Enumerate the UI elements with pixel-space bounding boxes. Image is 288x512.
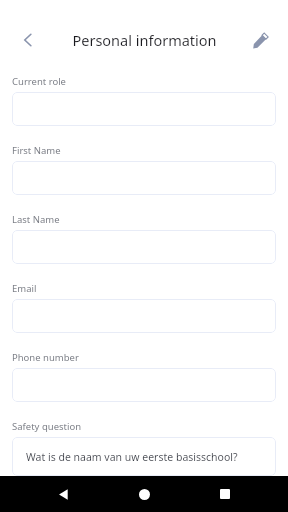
staticText: Current role: [12, 75, 66, 88]
staticText: Personal information: [72, 30, 217, 50]
button[interactable]: [12, 230, 276, 264]
staticText: Phone number: [12, 351, 79, 364]
button[interactable]: Back: [11, 23, 45, 57]
button[interactable]: [12, 161, 276, 195]
button[interactable]: [12, 299, 276, 333]
staticText: Email: [12, 282, 37, 295]
button[interactable]: Wat is de naam van uw eerste basisschool…: [12, 437, 276, 476]
button[interactable]: [12, 368, 276, 402]
staticText: First Name: [12, 144, 61, 157]
staticText: Safety question: [12, 420, 82, 433]
button[interactable]: [12, 92, 276, 126]
button[interactable]: Home: [126, 476, 162, 512]
staticText: Last Name: [12, 213, 60, 226]
button[interactable]: Edit: [243, 23, 277, 57]
button[interactable]: Recent apps: [207, 476, 243, 512]
staticText: Wat is de naam van uw eerste basisschool…: [26, 450, 238, 464]
button[interactable]: Back: [45, 476, 81, 512]
